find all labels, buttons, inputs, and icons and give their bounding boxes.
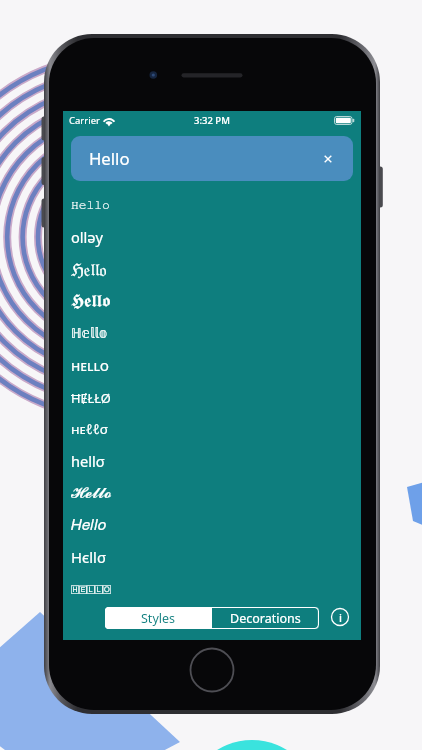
staticText: Hello bbox=[89, 147, 130, 170]
button[interactable]: 𝓗𝓮𝓵𝓵𝓸 bbox=[63, 477, 361, 509]
staticText: ĦɆŁŁØ bbox=[71, 389, 111, 406]
staticText: 🄷🄴🄻🄻🄾 bbox=[71, 586, 111, 593]
button[interactable]: 🄷🄴🄻🄻🄾 bbox=[63, 573, 361, 605]
button[interactable]: Clear text bbox=[320, 151, 336, 167]
button[interactable]: ℌ𝔢𝔩𝔩𝔬 bbox=[63, 253, 361, 285]
staticText: ʜᴇℓℓσ bbox=[71, 420, 108, 438]
staticText: ʜᴇʟʟᴏ bbox=[71, 355, 110, 375]
staticText: 𝐻𝑒𝑙𝑙𝑜 bbox=[71, 518, 107, 533]
button[interactable]: Hello bbox=[71, 136, 353, 181]
button[interactable]: 𝕳𝖊𝖑𝖑𝖔 bbox=[63, 285, 361, 317]
button[interactable]: ℍ𝕖𝕝𝕝𝕠 bbox=[63, 317, 361, 349]
staticText: Carrier bbox=[69, 114, 100, 127]
staticText: 𝙷𝚎𝚕𝚕𝚘 bbox=[71, 200, 110, 211]
staticText: 𝓗𝓮𝓵𝓵𝓸 bbox=[71, 485, 112, 501]
button[interactable]: ʜᴇʟʟᴏ bbox=[63, 349, 361, 381]
button[interactable]: ʜᴇℓℓσ bbox=[63, 413, 361, 445]
staticText: hellσ bbox=[71, 451, 105, 471]
button[interactable]: olləy bbox=[63, 221, 361, 253]
staticText: ℌ𝔢𝔩𝔩𝔬 bbox=[71, 257, 107, 281]
staticText: Decorations bbox=[230, 610, 301, 627]
button[interactable]: hellσ bbox=[63, 445, 361, 477]
button[interactable]: ĦɆŁŁØ bbox=[63, 381, 361, 413]
button[interactable]: Нєllσ bbox=[63, 541, 361, 573]
staticText: Нєllσ bbox=[71, 547, 107, 567]
staticText: 3:32 PM bbox=[194, 114, 230, 127]
button[interactable]: Info bbox=[331, 608, 349, 626]
button[interactable]: 𝙷𝚎𝚕𝚕𝚘 bbox=[63, 189, 361, 221]
staticText: olləy bbox=[71, 227, 104, 247]
staticText: Styles bbox=[141, 610, 176, 627]
button[interactable]: Decorations bbox=[212, 607, 319, 629]
staticText: i bbox=[339, 610, 342, 625]
button[interactable]: 𝐻𝑒𝑙𝑙𝑜 bbox=[63, 509, 361, 541]
staticText: ℍ𝕖𝕝𝕝𝕠 bbox=[71, 324, 108, 342]
button[interactable]: Styles bbox=[105, 607, 212, 629]
staticText: 𝕳𝖊𝖑𝖑𝖔 bbox=[71, 292, 111, 310]
